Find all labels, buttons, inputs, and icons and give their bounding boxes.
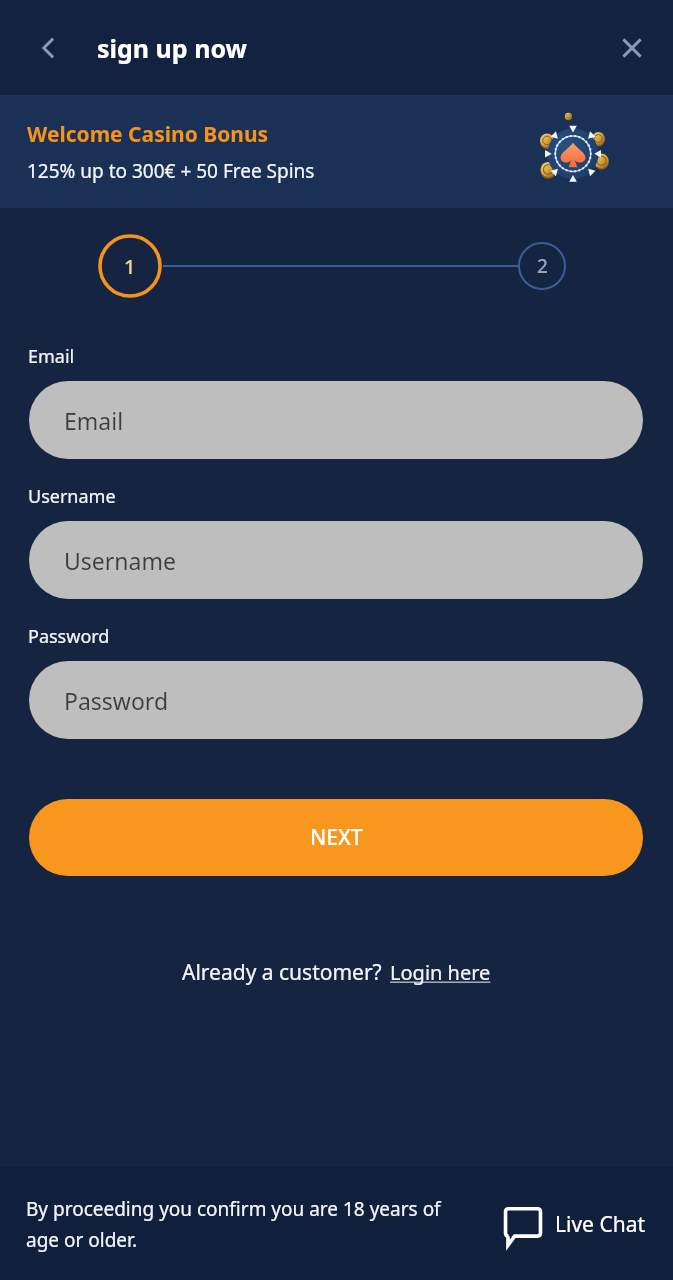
staticText: 2 <box>537 253 548 279</box>
staticText: NEXT <box>310 823 363 852</box>
button[interactable]: Password <box>29 661 643 739</box>
button[interactable]: 1 <box>100 236 160 296</box>
staticText: Password <box>28 624 110 649</box>
staticText: Already a customer? <box>182 958 382 987</box>
staticText: Welcome Casino Bonus <box>27 120 269 149</box>
staticText: sign up now <box>97 31 247 65</box>
staticText: Email <box>64 405 124 436</box>
staticText: Password <box>64 685 169 716</box>
staticText: Live Chat <box>555 1210 646 1239</box>
staticText: Email <box>28 344 75 369</box>
button[interactable]: Close <box>605 21 659 75</box>
button[interactable]: Username <box>29 521 643 599</box>
staticText: 1 <box>124 253 136 280</box>
staticText: By proceeding you confirm you are 18 yea… <box>26 1196 441 1252</box>
button[interactable]: Login here <box>390 959 491 986</box>
staticText: Username <box>28 484 116 509</box>
button[interactable]: Back <box>22 21 76 75</box>
button[interactable]: 2 <box>519 243 565 289</box>
button[interactable]: Welcome Casino Bonus <box>0 95 673 208</box>
button[interactable]: Live Chat <box>504 1205 646 1243</box>
staticText: Login here <box>390 959 491 986</box>
button[interactable]: Email <box>29 381 643 459</box>
staticText: Username <box>64 545 176 576</box>
button[interactable]: NEXT <box>29 799 643 876</box>
staticText: 125% up to 300€ + 50 Free Spins <box>27 158 315 184</box>
